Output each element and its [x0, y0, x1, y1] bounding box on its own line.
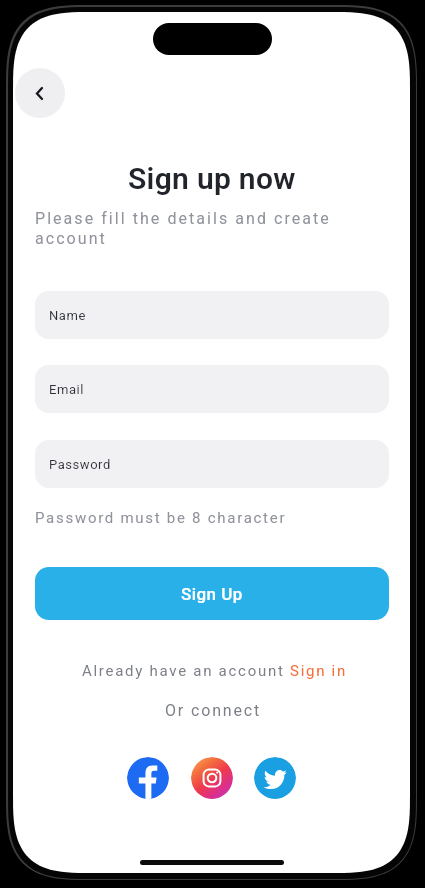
button[interactable]: Password [35, 440, 389, 488]
button[interactable]: Facebook [127, 757, 169, 799]
staticText: Password [49, 457, 111, 472]
button[interactable]: Instagram [191, 757, 233, 799]
button[interactable]: Name [35, 291, 389, 339]
button[interactable]: Back [15, 68, 65, 118]
staticText: Sign in [290, 662, 347, 680]
button[interactable]: Twitter [254, 757, 296, 799]
staticText: Or connect [165, 701, 262, 720]
staticText: Email [49, 382, 84, 397]
button[interactable]: Sign in [290, 662, 347, 680]
button[interactable]: Sign Up [35, 567, 389, 620]
staticText: Name [49, 308, 86, 323]
staticText: Sign up now [128, 161, 296, 196]
staticText: Sign Up [181, 584, 243, 604]
button[interactable]: Email [35, 365, 389, 413]
staticText: Please fill the details and create accou… [35, 209, 340, 248]
staticText: Password must be 8 character [35, 509, 287, 527]
staticText: Already have an account [82, 662, 290, 680]
